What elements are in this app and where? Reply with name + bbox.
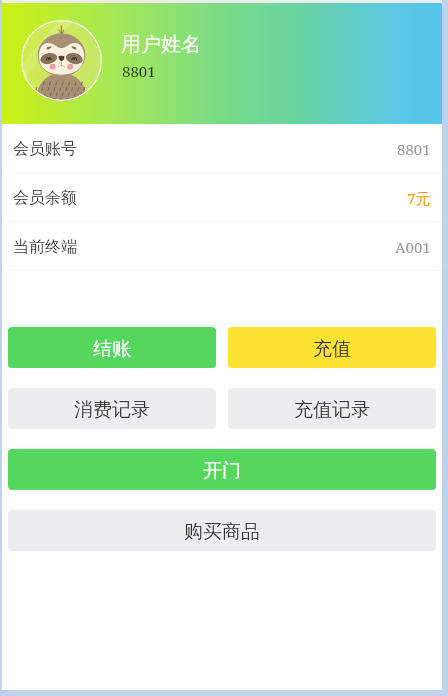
button[interactable]: 开门 — [8, 449, 436, 490]
staticText: 8801 — [397, 139, 431, 159]
button[interactable]: 购买商品 — [8, 510, 436, 551]
staticText: 充值记录 — [294, 398, 370, 422]
staticText: 结账 — [93, 337, 131, 361]
button[interactable]: 充值记录 — [228, 388, 436, 429]
button[interactable]: 充值 — [228, 327, 436, 368]
staticText: 开门 — [203, 459, 241, 483]
button[interactable]: 消费记录 — [8, 388, 216, 429]
button[interactable]: Profile avatar — [21, 20, 102, 101]
staticText: 用户姓名 — [121, 32, 201, 57]
staticText: 当前终端 — [13, 237, 77, 257]
staticText: 会员余额 — [13, 188, 77, 208]
button[interactable]: 会员账号 — [2, 124, 442, 173]
staticText: 8801 — [122, 61, 156, 81]
staticText: 购买商品 — [184, 520, 260, 544]
staticText: 消费记录 — [74, 398, 150, 422]
staticText: 会员账号 — [13, 139, 77, 159]
button[interactable]: 会员余额 — [2, 173, 442, 222]
staticText: 7元 — [407, 188, 431, 208]
staticText: A001 — [395, 237, 431, 257]
staticText: 充值 — [313, 337, 351, 361]
button[interactable]: 结账 — [8, 327, 216, 368]
button[interactable]: 当前终端 — [2, 222, 442, 271]
